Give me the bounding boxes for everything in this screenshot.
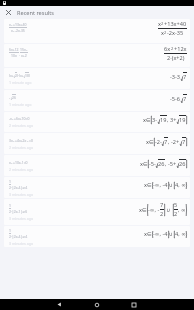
staticText: +4x+2x	[15, 138, 27, 143]
staticText: -2-	[155, 138, 162, 146]
staticText: 1	[9, 179, 11, 184]
staticText: 3 minutes ago	[9, 216, 34, 221]
staticText: 2	[11, 23, 13, 26]
staticText: 7	[164, 138, 168, 146]
staticText: 2 minutes ago	[9, 123, 34, 128]
staticText: x∈	[146, 138, 154, 146]
button[interactable]: 6x+12	[4, 44, 190, 67]
staticText: 2	[13, 139, 15, 142]
staticText: 2	[26, 48, 28, 51]
button[interactable]: -	[4, 90, 190, 111]
staticText: 2	[174, 210, 178, 218]
staticText: ·	[19, 53, 20, 58]
staticText: -	[9, 95, 11, 100]
staticText: , -5+	[165, 160, 177, 168]
staticText: )·(x+	[17, 73, 24, 78]
staticText: 2	[11, 161, 13, 164]
staticText: x+2	[21, 53, 27, 58]
staticText: 10x	[11, 53, 17, 58]
staticText: x	[11, 28, 13, 33]
staticText: +6x+10=0	[14, 116, 30, 121]
staticText: x∈	[144, 230, 152, 238]
staticText: x∈	[140, 160, 148, 168]
staticText: 2 minutes ago	[9, 167, 34, 172]
staticText: 2	[15, 73, 17, 78]
staticText: 1	[9, 203, 11, 208]
staticText: 7	[183, 73, 187, 81]
button[interactable]: Home	[91, 299, 102, 310]
staticText: 2	[9, 234, 11, 239]
button[interactable]: Close	[0, 6, 16, 19]
staticText: +13x+40	[13, 22, 27, 27]
staticText: -5-	[149, 160, 156, 168]
staticText: -x	[9, 116, 12, 121]
staticText: 7	[183, 95, 187, 103]
staticText: Recent results	[17, 9, 55, 17]
staticText: 2	[12, 117, 14, 120]
button[interactable]: 3x	[4, 133, 190, 154]
staticText: +10x-1=0	[13, 160, 28, 165]
staticText: -∞, -	[148, 206, 160, 214]
staticText: 2	[13, 29, 15, 32]
staticText: 15x	[20, 47, 26, 52]
staticText: )	[29, 73, 31, 78]
staticText: 2	[161, 21, 164, 26]
button[interactable]: x	[4, 155, 190, 176]
staticText: =0	[29, 138, 33, 143]
button[interactable]: 1	[4, 226, 190, 247]
staticText: 1	[9, 228, 11, 233]
staticText: ·|2x-4|≥4	[11, 185, 28, 190]
staticText: 2	[27, 139, 29, 142]
staticText: 3 minutes ago	[9, 192, 34, 197]
button[interactable]: 1	[4, 177, 190, 198]
staticText: x	[9, 160, 11, 165]
staticText: 7	[182, 138, 186, 146]
staticText: 2	[164, 30, 167, 35]
staticText: -2x-35	[167, 29, 184, 37]
staticText: -∞, -4	[153, 181, 168, 189]
staticText: ∪	[165, 206, 173, 214]
staticText: 2	[160, 210, 164, 218]
button[interactable]: -x	[4, 112, 190, 132]
staticText: x∈	[139, 206, 147, 214]
staticText: 7	[160, 201, 164, 209]
staticText: (x+	[9, 73, 14, 78]
staticText: 19	[179, 116, 186, 124]
staticText: 4, ∞	[175, 230, 186, 238]
button[interactable]: Recent apps	[128, 299, 139, 310]
staticText: +13x+40	[164, 20, 187, 28]
staticText: -2x-35	[15, 28, 25, 33]
staticText: 2	[9, 185, 11, 190]
staticText: 1 minute ago	[9, 80, 32, 85]
staticText: 3 minutes ago	[9, 241, 34, 246]
button[interactable]: Back	[54, 299, 65, 310]
staticText: 26	[158, 160, 165, 168]
staticText: ·|2x-1|≥6	[11, 209, 28, 214]
staticText: 3-	[152, 116, 158, 124]
staticText: 4, ∞	[175, 181, 186, 189]
staticText: +12x	[174, 45, 187, 53]
staticText: 6x	[164, 45, 171, 53]
staticText: -5-6	[170, 95, 181, 103]
staticText: 2 minutes ago	[9, 145, 34, 150]
staticText: ·|2x-4|≥4	[11, 234, 28, 239]
button[interactable]: x	[4, 19, 190, 43]
staticText: 2	[171, 46, 174, 51]
staticText: -∞, -4	[153, 230, 168, 238]
staticText: 6x+12	[9, 47, 19, 52]
staticText: 2	[9, 209, 11, 214]
staticText: ∪	[169, 182, 174, 189]
button[interactable]: 1	[4, 199, 190, 225]
staticText: 26	[12, 95, 16, 100]
staticText: 5	[174, 201, 178, 209]
staticText: 1 minute ago	[9, 102, 32, 107]
staticText: x	[161, 29, 164, 37]
staticText: x	[158, 20, 161, 28]
button[interactable]: (x+	[4, 68, 190, 89]
staticText: 3x	[9, 138, 13, 143]
staticText: 19	[160, 116, 167, 124]
staticText: 18	[25, 73, 29, 78]
staticText: x∈	[144, 181, 152, 189]
staticText: 26	[179, 160, 186, 168]
staticText: -3-3	[170, 73, 181, 81]
